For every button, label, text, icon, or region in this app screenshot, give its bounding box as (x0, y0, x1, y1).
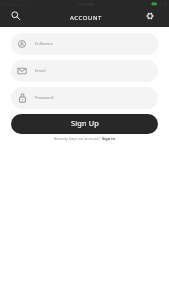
staticText: Fullname (35, 41, 53, 47)
button[interactable]: Search (7, 7, 25, 25)
button[interactable]: Settings (141, 7, 159, 25)
button[interactable]: Fullname (11, 33, 158, 55)
staticText: Email (35, 68, 46, 74)
button[interactable]: Email (11, 60, 158, 82)
staticText: Password (35, 95, 54, 101)
staticText: Sign Up (71, 118, 99, 128)
staticText: 1:18 PM (77, 2, 93, 8)
button[interactable]: Sign in (102, 136, 115, 141)
button[interactable]: Sign Up (11, 114, 158, 134)
staticText: ACCOUNT (70, 14, 102, 22)
staticText: Already have an account? (54, 136, 101, 141)
button[interactable]: Password (11, 87, 158, 109)
